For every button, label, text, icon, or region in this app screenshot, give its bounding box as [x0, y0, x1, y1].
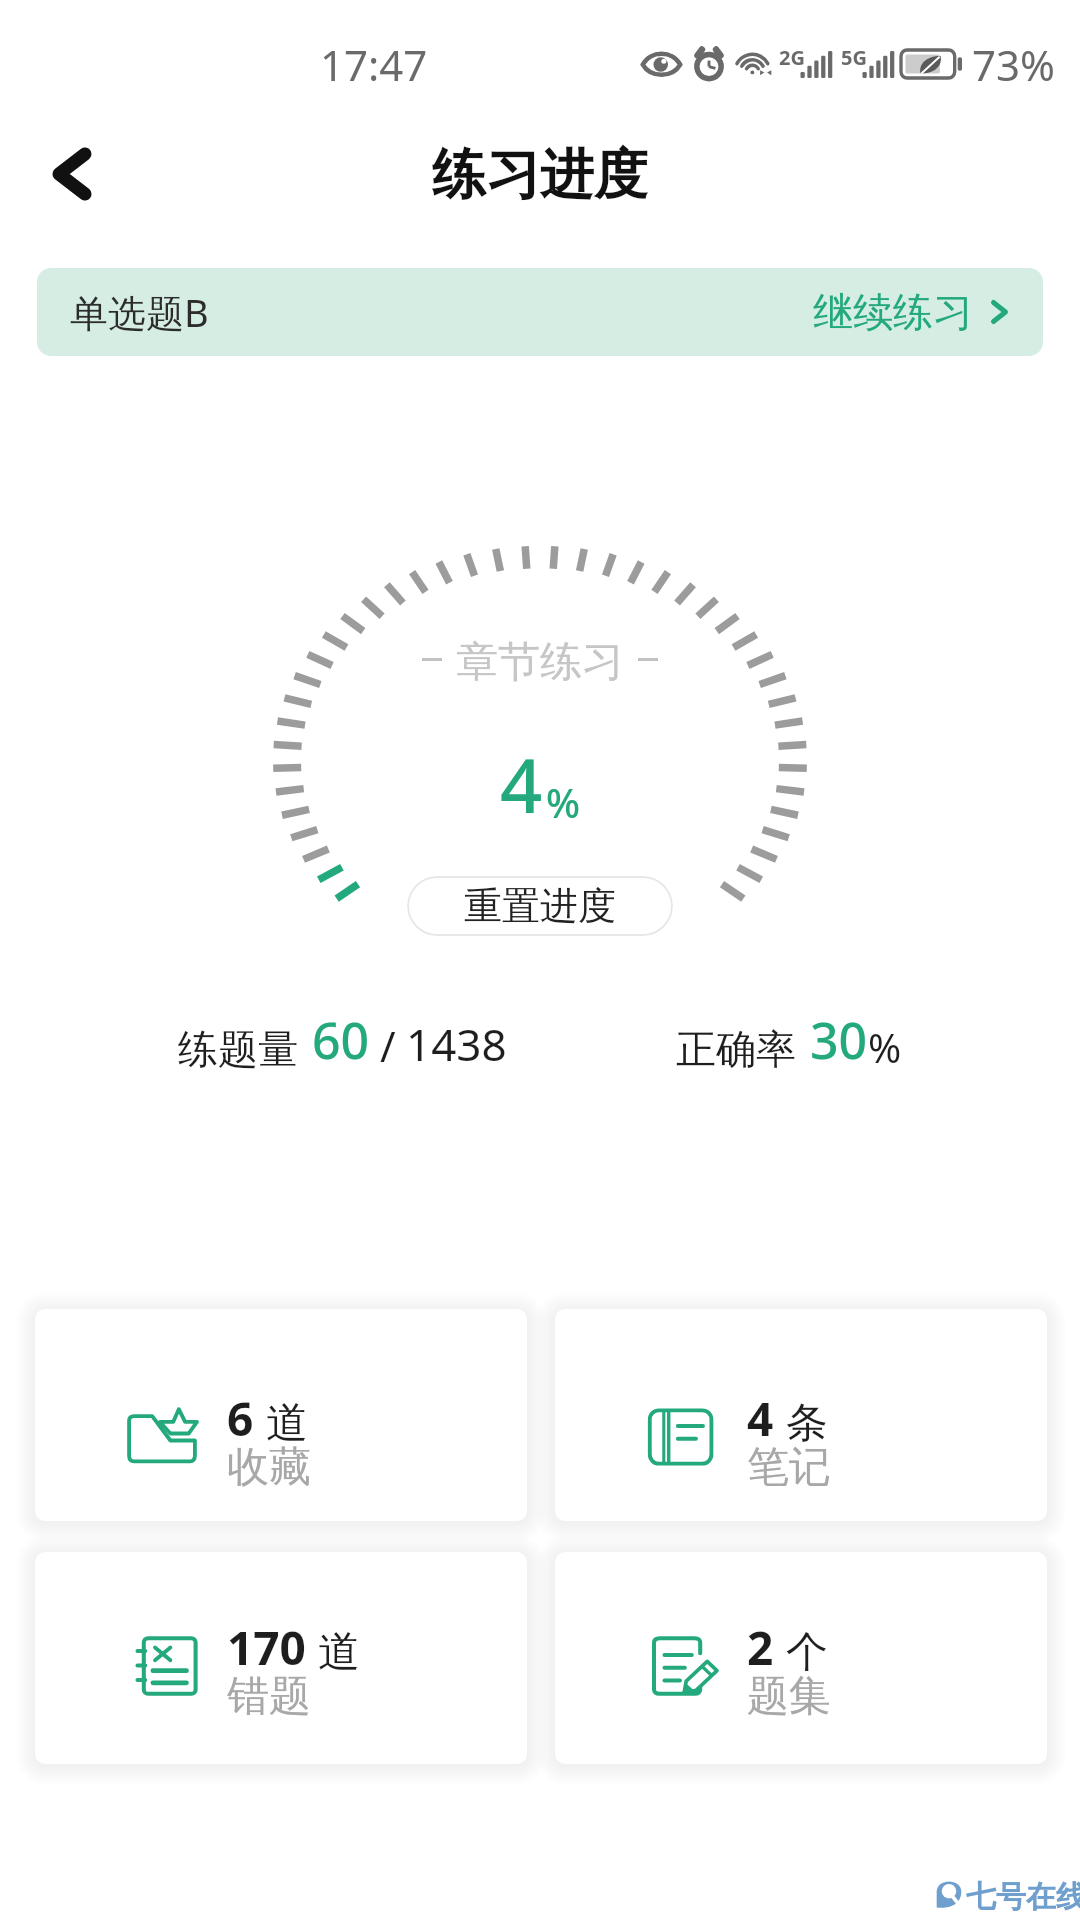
staticText: 17:47: [320, 36, 428, 93]
staticText: 5G: [841, 44, 867, 71]
staticText: 收藏: [227, 1441, 311, 1494]
staticText: 单选题B: [70, 286, 209, 338]
button[interactable]: 170: [35, 1552, 527, 1764]
staticText: %: [868, 1020, 902, 1074]
staticText: 4: [500, 734, 543, 835]
button[interactable]: 重置进度: [407, 876, 673, 936]
staticText: 章节练习: [456, 636, 624, 689]
staticText: 错题: [227, 1670, 311, 1723]
staticText: 道: [266, 1397, 308, 1450]
staticText: 个: [786, 1626, 828, 1679]
staticText: /: [380, 1017, 396, 1074]
staticText: %: [546, 775, 581, 829]
button[interactable]: 2: [555, 1552, 1047, 1764]
button[interactable]: Back: [30, 132, 114, 216]
staticText: 题集: [747, 1670, 831, 1723]
staticText: 七号在线: [966, 1878, 1080, 1916]
staticText: 170: [227, 1616, 306, 1679]
staticText: 30: [810, 1006, 868, 1074]
staticText: 1438: [406, 1014, 507, 1074]
button[interactable]: 单选题B: [37, 268, 1043, 356]
staticText: 60: [312, 1006, 370, 1074]
staticText: 道: [318, 1626, 360, 1679]
button[interactable]: 6: [35, 1309, 527, 1521]
staticText: 正确率: [676, 1024, 796, 1074]
staticText: 笔记: [747, 1441, 831, 1494]
staticText: 重置进度: [464, 882, 616, 930]
staticText: 2G: [779, 44, 805, 71]
staticText: 2: [747, 1616, 774, 1679]
staticText: 继续练习: [813, 287, 973, 337]
staticText: 4: [747, 1387, 774, 1450]
button[interactable]: 4: [555, 1309, 1047, 1521]
staticText: 73%: [972, 36, 1055, 93]
staticText: 条: [786, 1397, 828, 1450]
staticText: 练习进度: [432, 141, 648, 209]
staticText: 6: [227, 1387, 254, 1450]
staticText: 练题量: [178, 1024, 298, 1074]
